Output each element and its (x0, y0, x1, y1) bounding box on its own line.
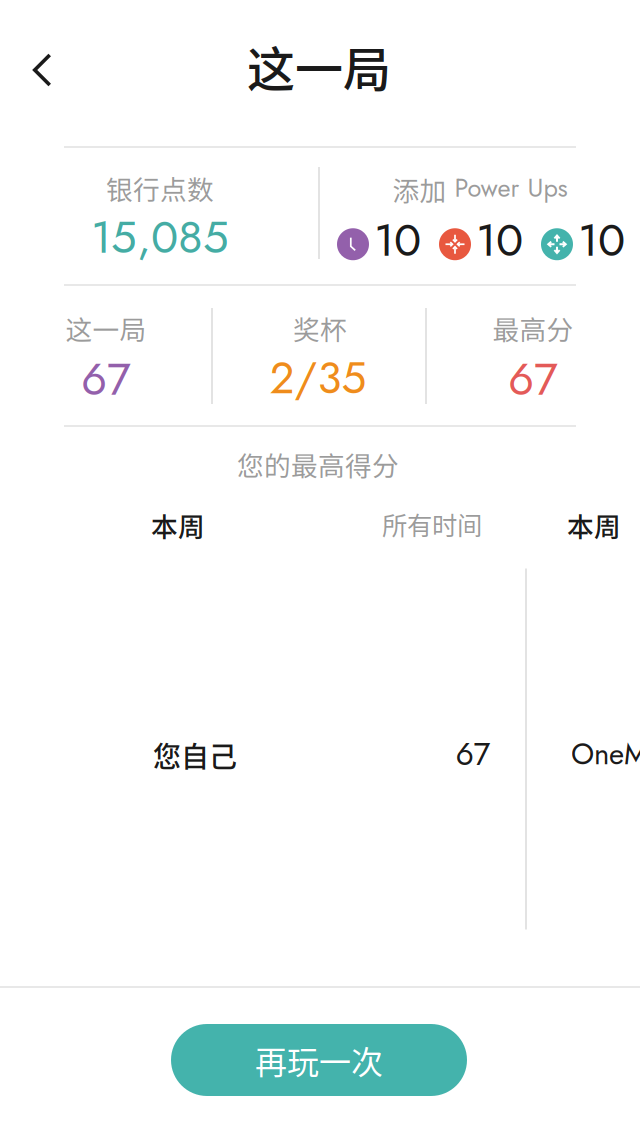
staticText: 添加 Power Ups (392, 170, 567, 208)
staticText: 本周 (151, 506, 205, 544)
staticText: 2/35 (269, 346, 366, 410)
staticText: 最高分 (492, 309, 573, 347)
staticText: 再玩一次 (255, 1037, 383, 1083)
staticText: 67 (508, 346, 558, 412)
staticText: 奖杯 (293, 309, 347, 347)
staticText: 本周 (567, 506, 621, 544)
staticText: 这一局 (247, 31, 391, 101)
button[interactable]: Back (5, 33, 79, 107)
button[interactable]: 再玩一次 (171, 1024, 467, 1096)
staticText: 67 (81, 346, 131, 412)
staticText: 15,085 (91, 204, 229, 270)
staticText: 所有时间 (382, 506, 482, 542)
staticText: OneMillion (571, 733, 640, 775)
staticText: 这一局 (65, 309, 146, 347)
staticText: 10 (374, 207, 421, 273)
staticText: 您自己 (153, 735, 237, 775)
staticText: 67 (455, 731, 490, 777)
staticText: 您的最高得分 (237, 445, 399, 483)
staticText: 银行点数 (106, 169, 214, 207)
staticText: 10 (476, 207, 523, 273)
staticText: 10 (578, 207, 625, 273)
